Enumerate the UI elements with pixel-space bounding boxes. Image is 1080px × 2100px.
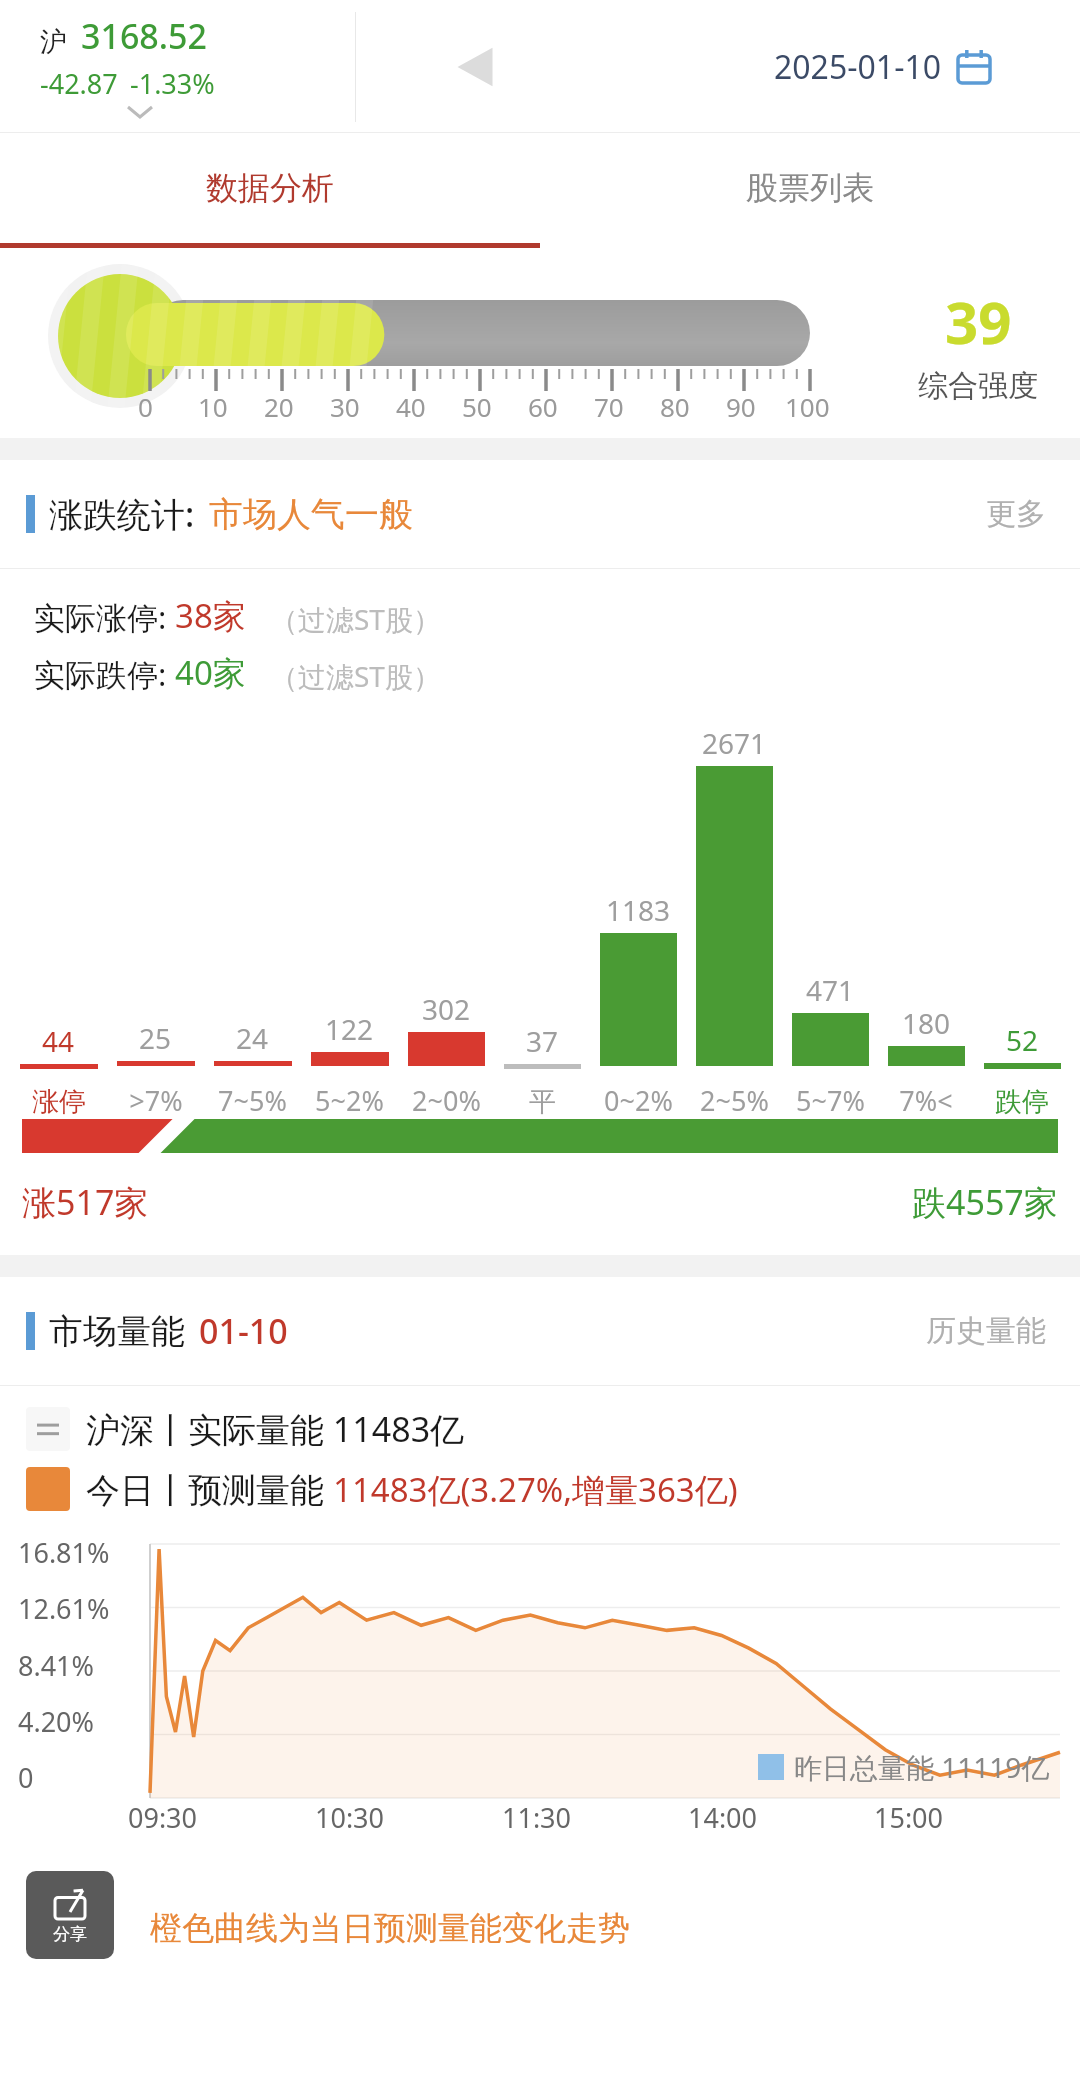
staticText: 50 (462, 389, 492, 424)
button[interactable]: 股票列表 (540, 133, 1080, 243)
staticText: 分享 (53, 1924, 87, 1945)
staticText: 7~5% (218, 1082, 287, 1119)
staticText: 0 (18, 1759, 34, 1796)
staticText: 10:30 (315, 1799, 385, 1836)
staticText: 60 (528, 389, 558, 424)
staticText: 5~7% (796, 1082, 865, 1119)
staticText: 历史量能 (926, 1312, 1046, 1350)
staticText: 01-10 (199, 1308, 288, 1354)
staticText: 38家 (175, 593, 246, 638)
staticText: 更多 (986, 495, 1046, 533)
staticText: 24 (236, 1019, 269, 1057)
staticText: 2025-01-10 (774, 45, 942, 89)
staticText: 40 (396, 389, 426, 424)
staticText: 180 (902, 1004, 951, 1042)
staticText: -1.33% (130, 65, 215, 102)
staticText: 1183 (606, 891, 671, 929)
staticText: 09:30 (128, 1799, 198, 1836)
staticText: 11483亿(3.27%,增量363亿) (333, 1467, 738, 1512)
staticText: （过滤ST股） (270, 600, 441, 638)
staticText: 30 (330, 389, 360, 424)
staticText: 2671 (702, 724, 767, 762)
staticText: 4.20% (18, 1703, 95, 1740)
staticText: 涨跌统计: (49, 491, 195, 537)
staticText: 8.41% (18, 1647, 95, 1684)
staticText: 跌4557家 (912, 1179, 1058, 1225)
staticText: 52 (1006, 1021, 1039, 1059)
button[interactable]: Previous day (440, 32, 510, 102)
staticText: 0 (138, 389, 153, 424)
button[interactable]: 更多 (978, 487, 1054, 541)
staticText: 16.81% (18, 1534, 110, 1571)
staticText: 市场人气一般 (209, 493, 413, 536)
staticText: 跌停 (995, 1085, 1049, 1119)
staticText: 40家 (175, 650, 246, 695)
staticText: （过滤ST股） (270, 657, 441, 695)
staticText: 涨517家 (22, 1179, 149, 1225)
staticText: 25 (139, 1019, 172, 1057)
staticText: 2~5% (700, 1082, 769, 1119)
staticText: 44 (42, 1022, 75, 1060)
staticText: 302 (422, 990, 471, 1028)
staticText: 2~0% (412, 1082, 481, 1119)
staticText: 股票列表 (746, 168, 874, 208)
staticText: 昨日总量能 11119亿 (794, 1748, 1050, 1786)
staticText: 80 (660, 389, 690, 424)
staticText: 实际跌停: (34, 653, 175, 695)
staticText: 122 (325, 1010, 374, 1048)
staticText: 0~2% (604, 1082, 673, 1119)
staticText: 14:00 (688, 1799, 758, 1836)
staticText: 5~2% (315, 1082, 384, 1119)
button[interactable]: 数据分析 (0, 133, 540, 243)
button[interactable]: 2025-01-10 (718, 29, 1048, 105)
staticText: 数据分析 (206, 168, 334, 208)
staticText: 沪 (40, 25, 67, 59)
staticText: 20 (264, 389, 294, 424)
staticText: 实际涨停: (34, 596, 175, 638)
staticText: >7% (129, 1082, 183, 1119)
staticText: 70 (594, 389, 624, 424)
staticText: 10 (198, 389, 228, 424)
button[interactable]: 分享 (26, 1871, 114, 1959)
staticText: 37 (526, 1022, 559, 1060)
staticText: 平 (529, 1085, 556, 1119)
staticText: 沪深丨实际量能 11483亿 (86, 1406, 465, 1452)
staticText: 涨停 (32, 1085, 86, 1119)
staticText: 39 (945, 282, 1012, 361)
staticText: 12.61% (18, 1590, 110, 1627)
staticText: 市场量能 (49, 1310, 185, 1353)
staticText: 15:00 (874, 1799, 944, 1836)
button[interactable]: 历史量能 (918, 1304, 1054, 1358)
staticText: 471 (806, 971, 855, 1009)
staticText: 11:30 (502, 1799, 572, 1836)
staticText: -42.87 (40, 65, 118, 102)
staticText: 3168.52 (81, 13, 207, 59)
staticText: 100 (785, 389, 830, 424)
staticText: 橙色曲线为当日预测量能变化走势 (150, 1908, 630, 1948)
staticText: 90 (726, 389, 756, 424)
staticText: 今日丨预测量能 (86, 1466, 333, 1512)
staticText: 综合强度 (918, 367, 1038, 405)
staticText: 7%< (899, 1082, 953, 1119)
